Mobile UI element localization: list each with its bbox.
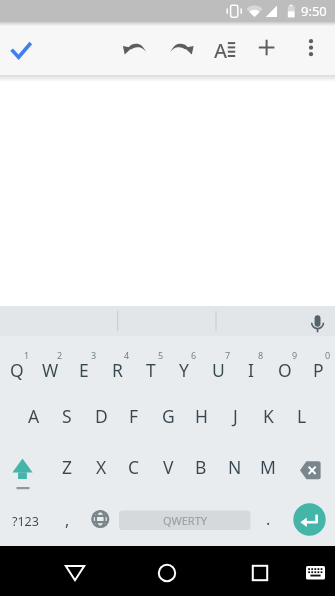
button[interactable] xyxy=(35,546,115,596)
staticText: 3 xyxy=(91,349,97,361)
staticText: A xyxy=(28,404,40,428)
button[interactable] xyxy=(101,336,135,389)
button[interactable] xyxy=(17,389,51,442)
staticText: 4 xyxy=(124,349,130,361)
button[interactable] xyxy=(84,389,118,442)
button[interactable] xyxy=(0,441,50,494)
button[interactable] xyxy=(151,441,185,494)
button[interactable] xyxy=(34,336,68,389)
staticText: 5 xyxy=(158,349,164,361)
button[interactable] xyxy=(127,546,207,596)
staticText: O xyxy=(278,358,292,382)
staticText: N xyxy=(228,455,242,479)
staticText: C xyxy=(128,455,140,479)
button[interactable] xyxy=(184,389,218,442)
button[interactable] xyxy=(50,494,84,547)
button[interactable] xyxy=(151,389,185,442)
staticText: P xyxy=(313,358,324,382)
button[interactable] xyxy=(247,22,291,75)
staticText: 8 xyxy=(258,349,264,361)
staticText: Z xyxy=(62,455,73,479)
button[interactable] xyxy=(251,441,285,494)
button[interactable] xyxy=(285,441,335,494)
staticText: W xyxy=(42,358,59,382)
staticText: V xyxy=(163,455,174,479)
button[interactable] xyxy=(251,494,285,547)
staticText: B xyxy=(195,455,207,479)
staticText: M xyxy=(260,455,276,479)
staticText: R xyxy=(112,358,123,382)
staticText: QWERTY xyxy=(163,513,208,528)
button[interactable] xyxy=(184,441,218,494)
staticText: S xyxy=(62,404,72,428)
button[interactable] xyxy=(201,336,235,389)
button[interactable] xyxy=(285,494,335,547)
button[interactable] xyxy=(160,22,204,75)
staticText: 2 xyxy=(57,349,63,361)
button[interactable] xyxy=(116,22,160,75)
button[interactable] xyxy=(0,336,34,389)
button[interactable] xyxy=(50,389,84,442)
staticText: T xyxy=(146,358,156,382)
staticText: . xyxy=(266,508,271,530)
button[interactable] xyxy=(268,336,302,389)
staticText: J xyxy=(233,404,238,428)
staticText: 9:50 xyxy=(301,2,327,20)
staticText: 9 xyxy=(292,349,298,361)
button[interactable] xyxy=(117,494,251,547)
staticText: L xyxy=(297,404,307,428)
button[interactable] xyxy=(203,22,247,75)
staticText: , xyxy=(65,509,70,531)
staticText: I xyxy=(248,358,254,382)
staticText: K xyxy=(263,404,274,428)
button[interactable] xyxy=(218,389,252,442)
button[interactable] xyxy=(67,336,101,389)
button[interactable] xyxy=(300,306,335,336)
button[interactable] xyxy=(84,441,118,494)
button[interactable] xyxy=(50,441,84,494)
button[interactable] xyxy=(290,22,335,75)
button[interactable] xyxy=(117,389,151,442)
button[interactable] xyxy=(84,494,118,547)
button[interactable] xyxy=(285,389,319,442)
staticText: Y xyxy=(179,358,189,382)
staticText: Q xyxy=(10,358,24,382)
button[interactable] xyxy=(219,546,299,596)
button[interactable] xyxy=(235,336,269,389)
staticText: U xyxy=(212,358,225,382)
staticText: X xyxy=(96,455,107,479)
button[interactable] xyxy=(0,22,48,75)
button[interactable] xyxy=(168,336,202,389)
staticText: 6 xyxy=(191,349,197,361)
staticText: H xyxy=(195,404,208,428)
staticText: G xyxy=(162,404,175,428)
button[interactable] xyxy=(117,441,151,494)
staticText: D xyxy=(95,404,108,428)
button[interactable] xyxy=(218,441,252,494)
staticText: E xyxy=(79,358,89,382)
staticText: 7 xyxy=(225,349,231,361)
button[interactable] xyxy=(251,389,285,442)
staticText: 1 xyxy=(24,349,30,361)
staticText: A xyxy=(214,37,228,64)
button[interactable] xyxy=(302,336,335,389)
button[interactable] xyxy=(134,336,168,389)
staticText: ?123 xyxy=(12,513,39,530)
staticText: 0 xyxy=(325,349,331,361)
button[interactable] xyxy=(0,494,50,547)
button[interactable] xyxy=(299,546,335,596)
staticText: F xyxy=(129,404,139,428)
